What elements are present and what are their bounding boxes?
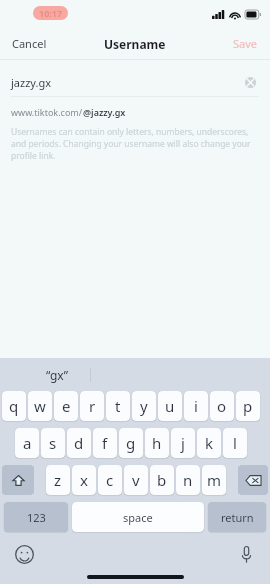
staticText: Cancel <box>12 36 47 51</box>
staticText: Save <box>233 36 258 51</box>
button[interactable]: v <box>124 465 148 495</box>
staticText: o <box>217 396 227 416</box>
button[interactable]: 123 <box>4 502 68 532</box>
button[interactable]: c <box>98 465 122 495</box>
button[interactable]: u <box>158 391 182 421</box>
staticText: j <box>181 433 185 453</box>
button[interactable]: g <box>119 428 143 458</box>
staticText: n <box>183 470 193 490</box>
button[interactable]: s <box>41 428 65 458</box>
staticText: x <box>80 470 88 490</box>
button[interactable]: Voice input <box>235 543 257 565</box>
staticText: www.tiktok.com/ <box>11 106 83 118</box>
staticText: 123 <box>27 510 46 525</box>
staticText: g <box>126 433 136 453</box>
staticText: c <box>106 470 114 490</box>
button[interactable]: x <box>72 465 96 495</box>
button[interactable]: “gx” <box>38 363 76 387</box>
staticText: s <box>49 433 57 453</box>
staticText: u <box>165 396 175 416</box>
button[interactable]: d <box>67 428 91 458</box>
button[interactable]: return <box>208 502 266 532</box>
button[interactable]: space <box>72 502 204 532</box>
button[interactable]: r <box>80 391 104 421</box>
staticText: “gx” <box>46 367 68 383</box>
staticText: return <box>221 510 254 525</box>
button[interactable]: n <box>176 465 200 495</box>
button[interactable]: z <box>46 465 70 495</box>
button[interactable]: t <box>106 391 130 421</box>
staticText: jazzy.gx <box>11 75 241 90</box>
staticText: 10:17 <box>39 7 63 19</box>
button[interactable]: l <box>223 428 247 458</box>
staticText: p <box>243 396 253 416</box>
staticText: r <box>89 396 96 416</box>
button[interactable]: a <box>15 428 39 458</box>
staticText: b <box>157 470 167 490</box>
staticText: y <box>140 396 148 416</box>
button[interactable]: i <box>184 391 208 421</box>
staticText: z <box>54 470 62 490</box>
staticText: d <box>74 433 84 453</box>
button[interactable]: f <box>93 428 117 458</box>
staticText: Usernames can contain only letters, numb… <box>11 126 259 162</box>
staticText: w <box>34 396 46 416</box>
staticText: k <box>205 433 214 453</box>
button[interactable]: p <box>236 391 260 421</box>
staticText: space <box>123 510 153 525</box>
staticText: Username <box>104 36 166 52</box>
button[interactable]: y <box>132 391 156 421</box>
staticText: e <box>62 396 71 416</box>
button[interactable]: Shift <box>2 465 34 495</box>
button[interactable]: Save <box>231 32 260 55</box>
button[interactable]: o <box>210 391 234 421</box>
button[interactable]: h <box>145 428 169 458</box>
button[interactable]: j <box>171 428 195 458</box>
button[interactable]: q <box>2 391 26 421</box>
staticText: i <box>194 396 198 416</box>
staticText: l <box>233 433 237 453</box>
staticText: v <box>132 470 140 490</box>
staticText: m <box>207 470 222 490</box>
button[interactable]: b <box>150 465 174 495</box>
button[interactable]: k <box>197 428 221 458</box>
button[interactable]: Backspace <box>238 465 268 495</box>
staticText: @jazzy.gx <box>83 106 126 118</box>
button[interactable]: Cancel <box>10 32 49 55</box>
button[interactable]: w <box>28 391 52 421</box>
button[interactable]: e <box>54 391 78 421</box>
button[interactable]: Emoji <box>13 543 35 565</box>
button[interactable]: Clear text <box>241 73 259 91</box>
staticText: h <box>152 433 162 453</box>
staticText: t <box>115 396 121 416</box>
staticText: f <box>102 433 108 453</box>
button[interactable]: m <box>202 465 226 495</box>
staticText: q <box>9 396 19 416</box>
staticText: a <box>23 433 32 453</box>
